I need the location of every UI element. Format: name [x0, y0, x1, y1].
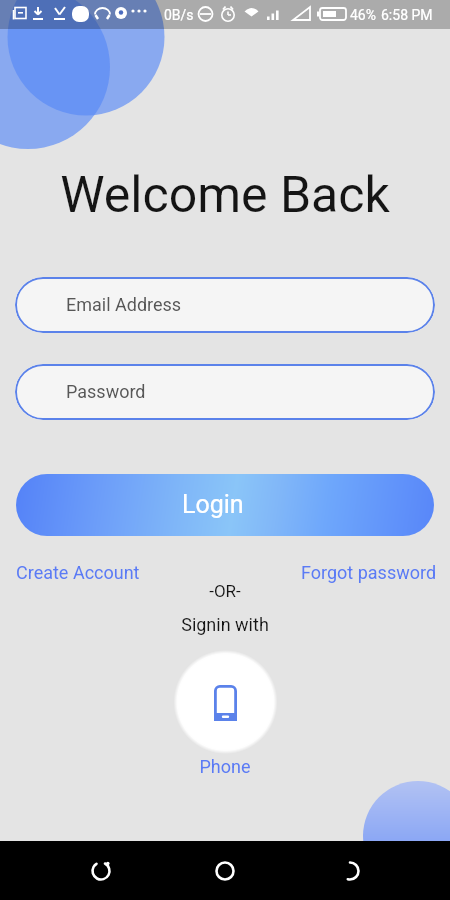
button[interactable]: Back	[326, 847, 374, 895]
staticText: Email Address	[66, 294, 182, 315]
button[interactable]: Email Address	[15, 277, 435, 333]
button[interactable]: Sign in with Phone	[177, 654, 274, 751]
button[interactable]: Home	[201, 847, 249, 895]
staticText: -OR-	[0, 581, 450, 601]
staticText: Phone	[0, 756, 450, 777]
button[interactable]: Recent apps	[77, 847, 125, 895]
button[interactable]: Forgot password	[301, 562, 437, 583]
staticText: 46%	[350, 7, 376, 23]
button[interactable]: Password	[15, 364, 435, 420]
button[interactable]: Create Account	[16, 562, 140, 583]
staticText: 6:58 PM	[381, 7, 433, 23]
staticText: Password	[66, 381, 146, 402]
staticText: 0B/s	[164, 7, 194, 23]
staticText: Welcome Back	[0, 166, 450, 225]
staticText: Login	[182, 490, 244, 519]
button[interactable]: Login	[16, 474, 434, 536]
staticText: Signin with	[0, 614, 450, 635]
